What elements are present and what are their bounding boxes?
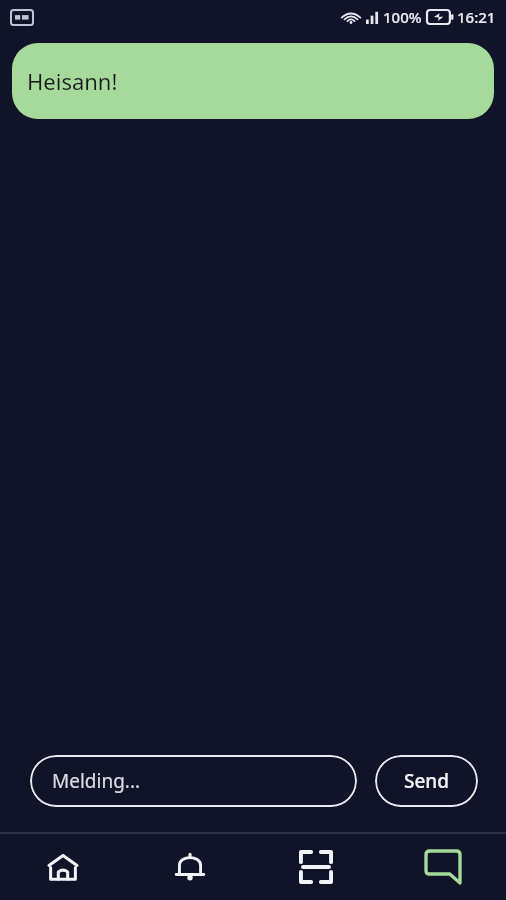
staticText: Send xyxy=(404,768,450,794)
staticText: 100% xyxy=(383,7,422,27)
button[interactable]: Messages xyxy=(380,834,506,900)
button[interactable]: Send xyxy=(375,755,478,807)
button[interactable]: Heisann! xyxy=(12,43,494,119)
staticText: 16:21 xyxy=(457,7,496,27)
button[interactable]: Home xyxy=(0,834,126,900)
staticText: Melding... xyxy=(52,768,141,794)
button[interactable]: Melding... xyxy=(30,755,357,807)
button[interactable]: Notifications xyxy=(127,834,253,900)
button[interactable]: Scan code xyxy=(253,834,379,900)
staticText: Heisann! xyxy=(27,66,118,96)
